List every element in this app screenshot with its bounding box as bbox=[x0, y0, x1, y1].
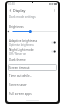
button[interactable]: More options bbox=[52, 8, 57, 13]
staticText: Adaptive brightness bbox=[9, 39, 38, 43]
staticText: Time out while... bbox=[9, 74, 33, 78]
button[interactable]: Brightness slider bbox=[7, 29, 58, 34]
button[interactable]: Screen timeout bbox=[8, 64, 57, 71]
button[interactable]: Back bbox=[8, 8, 13, 13]
staticText: Screen timeout bbox=[9, 66, 30, 70]
button[interactable]: Adaptive brightness bbox=[7, 38, 58, 47]
button[interactable]: Toggle setting bbox=[51, 41, 56, 44]
button[interactable]: Time out while... bbox=[7, 71, 58, 80]
button[interactable]: Dark mode settings bbox=[7, 14, 58, 19]
staticText: Optimise brightness bbox=[9, 43, 34, 47]
button[interactable]: Full screen apps bbox=[7, 89, 58, 98]
staticText: Dark mode settings bbox=[9, 15, 36, 19]
staticText: Dark theme bbox=[9, 58, 26, 62]
button[interactable]: Night Light mode bbox=[7, 47, 58, 56]
staticText: Display bbox=[13, 8, 26, 13]
staticText: Night Light mode bbox=[9, 48, 34, 52]
button[interactable]: Toggle setting bbox=[51, 50, 56, 53]
staticText: Off / Never on bbox=[9, 52, 27, 56]
staticText: Screen saver bbox=[9, 83, 27, 87]
button[interactable]: Dark theme bbox=[7, 56, 58, 64]
staticText: Brightness bbox=[9, 25, 24, 29]
staticText: 10:30 bbox=[8, 2, 15, 6]
button[interactable]: Screen saver bbox=[7, 80, 58, 89]
staticText: Full screen apps bbox=[9, 92, 32, 96]
